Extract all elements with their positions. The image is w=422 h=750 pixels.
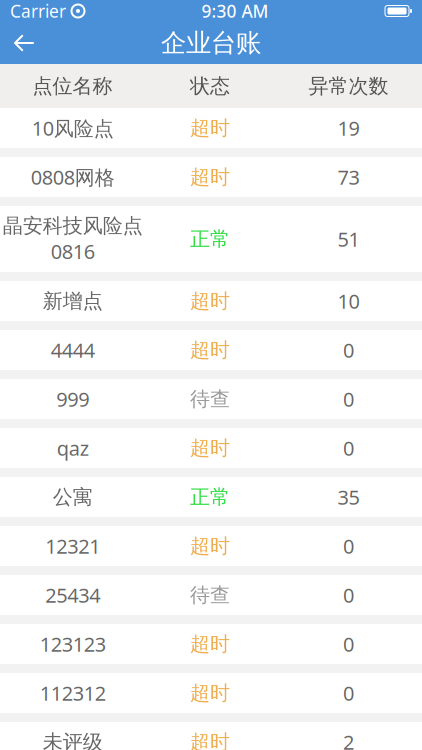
staticText: 待查 [190, 583, 230, 607]
staticText: 异常次数 [308, 74, 388, 98]
staticText: 12321 [45, 533, 100, 559]
staticText: 超时 [190, 338, 230, 362]
staticText: 超时 [190, 730, 230, 750]
staticText: 35 [337, 484, 359, 510]
button[interactable]: 12321 [0, 526, 422, 566]
staticText: 未评级 [42, 730, 102, 750]
button[interactable]: 112312 [0, 673, 422, 713]
staticText: 超时 [190, 534, 230, 558]
button[interactable]: 公寓 [0, 477, 422, 517]
staticText: 0 [343, 435, 354, 461]
staticText: 待查 [190, 387, 230, 411]
staticText: 0 [343, 582, 354, 608]
staticText: 正常 [190, 485, 230, 509]
staticText: 25434 [45, 582, 100, 608]
button[interactable]: 25434 [0, 575, 422, 615]
staticText: 51 [337, 226, 359, 252]
button[interactable]: Back [0, 23, 48, 63]
staticText: 新增点 [42, 289, 102, 313]
staticText: 4444 [50, 337, 94, 363]
staticText: qaz [56, 435, 88, 461]
staticText: Carrier [10, 0, 66, 22]
staticText: 超时 [190, 632, 230, 656]
staticText: 超时 [190, 116, 230, 140]
staticText: 73 [337, 164, 359, 190]
button[interactable]: 0808网格 [0, 157, 422, 197]
button[interactable]: 新增点 [0, 281, 422, 321]
button[interactable]: 未评级 [0, 722, 422, 750]
staticText: 正常 [190, 227, 230, 251]
staticText: 0 [343, 533, 354, 559]
staticText: 超时 [190, 436, 230, 460]
staticText: 10 [337, 288, 359, 314]
button[interactable]: 123123 [0, 624, 422, 664]
staticText: 状态 [190, 74, 230, 98]
button[interactable]: 4444 [0, 330, 422, 370]
staticText: 超时 [190, 165, 230, 189]
staticText: 999 [56, 386, 89, 412]
button[interactable]: 晶安科技风险点0816 [0, 206, 422, 272]
staticText: 0 [343, 680, 354, 706]
staticText: 企业台账 [161, 27, 261, 58]
button[interactable]: 999 [0, 379, 422, 419]
staticText: 晶安科技风险点0816 [2, 213, 142, 264]
staticText: 0 [343, 631, 354, 657]
button[interactable]: 10风险点 [0, 108, 422, 148]
staticText: 公寓 [52, 485, 92, 509]
staticText: 2 [343, 729, 354, 750]
button[interactable]: qaz [0, 428, 422, 468]
staticText: 超时 [190, 289, 230, 313]
staticText: 0808网格 [30, 164, 114, 190]
staticText: 10风险点 [31, 115, 113, 141]
staticText: 0 [343, 386, 354, 412]
staticText: 112312 [39, 680, 105, 706]
staticText: 0 [343, 337, 354, 363]
staticText: 9:30 AM [201, 0, 268, 22]
staticText: 19 [337, 115, 359, 141]
staticText: 123123 [39, 631, 105, 657]
staticText: 超时 [190, 681, 230, 705]
staticText: 点位名称 [32, 74, 112, 98]
